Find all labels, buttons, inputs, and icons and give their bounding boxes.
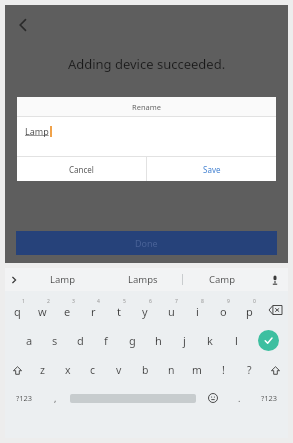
staticText: Cancel (69, 164, 94, 175)
button[interactable]: Shift (262, 359, 288, 381)
button[interactable]: Shift (5, 359, 30, 381)
staticText: x (65, 363, 71, 377)
staticText: n (168, 363, 175, 377)
button[interactable]: Enter (249, 327, 288, 353)
button[interactable]: ? (236, 359, 262, 381)
staticText: 2 (47, 298, 50, 305)
staticText: ! (222, 363, 225, 377)
staticText: i (196, 304, 199, 319)
button[interactable]: l (223, 327, 249, 353)
button[interactable]: 8 (184, 297, 210, 323)
button[interactable]: m (184, 359, 210, 381)
button[interactable]: b (132, 359, 158, 381)
staticText: ?123 (261, 393, 278, 403)
staticText: 0 (253, 298, 256, 305)
button[interactable]: v (106, 359, 132, 381)
button[interactable]: n (158, 359, 184, 381)
button[interactable]: c (80, 359, 106, 381)
button[interactable]: h (145, 327, 171, 353)
button[interactable]: , (43, 387, 67, 409)
staticText: p (246, 304, 253, 319)
staticText: e (64, 304, 71, 319)
button[interactable]: Emoji (198, 387, 228, 409)
staticText: q (14, 304, 21, 319)
staticText: v (116, 363, 122, 377)
staticText: 9 (227, 298, 230, 305)
button[interactable]: 2 (30, 297, 55, 323)
button[interactable]: k (197, 327, 223, 353)
button[interactable]: f (93, 327, 119, 353)
button[interactable]: g (119, 327, 145, 353)
staticText: Lamp (25, 125, 49, 137)
staticText: d (77, 333, 84, 348)
staticText: 5 (123, 298, 126, 305)
button[interactable]: d (67, 327, 93, 353)
button[interactable]: 5 (106, 297, 132, 323)
staticText: g (129, 333, 136, 348)
button[interactable]: Save (147, 157, 276, 181)
staticText: a (26, 333, 33, 348)
button[interactable]: 3 (55, 297, 80, 323)
button[interactable]: s (42, 327, 67, 353)
button[interactable]: 7 (158, 297, 184, 323)
staticText: s (52, 333, 58, 348)
staticText: o (220, 304, 227, 319)
staticText: 4 (97, 298, 100, 305)
staticText: Save (203, 164, 221, 175)
button[interactable]: Back (11, 13, 35, 37)
staticText: r (91, 304, 96, 319)
staticText: Lamps (128, 273, 158, 286)
staticText: ? (247, 363, 252, 377)
staticText: , (54, 392, 57, 404)
staticText: Lamp (50, 273, 76, 286)
button[interactable]: Camp (183, 268, 262, 291)
button[interactable]: Backspace (262, 297, 288, 323)
staticText: y (142, 304, 148, 319)
button[interactable]: Voice input (262, 268, 288, 291)
staticText: w (38, 304, 47, 319)
staticText: Rename (132, 102, 161, 112)
button[interactable]: j (171, 327, 197, 353)
button[interactable]: ! (210, 359, 236, 381)
staticText: Camp (209, 273, 236, 286)
staticText: h (155, 333, 162, 348)
staticText: 8 (201, 298, 204, 305)
button[interactable]: Expand suggestions (5, 268, 23, 291)
staticText: f (104, 333, 108, 348)
staticText: 6 (149, 298, 152, 305)
button[interactable]: a (17, 327, 42, 353)
staticText: b (142, 363, 149, 377)
staticText: j (183, 333, 186, 348)
staticText: Done (135, 237, 158, 249)
button[interactable]: Lamps (103, 268, 182, 291)
staticText: ?123 (16, 393, 33, 403)
staticText: 1 (22, 298, 25, 305)
button[interactable]: . (228, 387, 251, 409)
button[interactable]: 9 (210, 297, 236, 323)
staticText: k (207, 333, 213, 348)
button[interactable]: z (30, 359, 55, 381)
button[interactable]: Lamp (23, 268, 103, 291)
button[interactable]: 0 (236, 297, 262, 323)
button[interactable]: Cancel (17, 157, 146, 181)
staticText: z (40, 363, 45, 377)
button[interactable]: Space (67, 387, 198, 409)
staticText: m (192, 363, 202, 377)
staticText: . (238, 392, 241, 404)
staticText: t (117, 304, 121, 319)
staticText: u (168, 304, 175, 319)
staticText: 7 (175, 298, 178, 305)
button[interactable]: ?123 (251, 387, 288, 409)
button[interactable]: 6 (132, 297, 158, 323)
button[interactable]: x (55, 359, 80, 381)
button[interactable]: ?123 (5, 387, 43, 409)
staticText: l (235, 333, 238, 348)
staticText: 3 (72, 298, 75, 305)
button[interactable]: 4 (80, 297, 106, 323)
staticText: Adding device succeeded. (5, 55, 288, 73)
staticText: c (90, 363, 96, 377)
button[interactable]: 1 (5, 297, 30, 323)
